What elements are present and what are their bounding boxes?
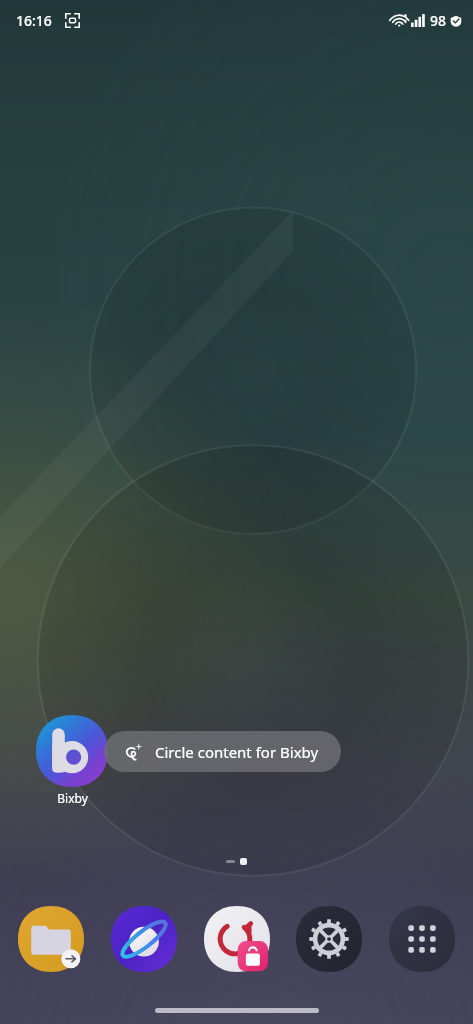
- staticText: Bixby: [57, 790, 88, 806]
- staticText: 98: [430, 11, 447, 30]
- button[interactable]: Settings: [296, 906, 362, 972]
- staticText: 16:16: [16, 11, 52, 30]
- button[interactable]: My Files folder: [18, 906, 84, 972]
- button[interactable]: Samsung Internet: [111, 906, 177, 972]
- button[interactable]: Bixby: [30, 715, 114, 806]
- staticText: Circle content for Bixby: [155, 742, 319, 762]
- button[interactable]: Circle content for Bixby: [104, 731, 341, 772]
- button[interactable]: Apps: [389, 906, 455, 972]
- button[interactable]: Galaxy Store: [204, 906, 270, 972]
